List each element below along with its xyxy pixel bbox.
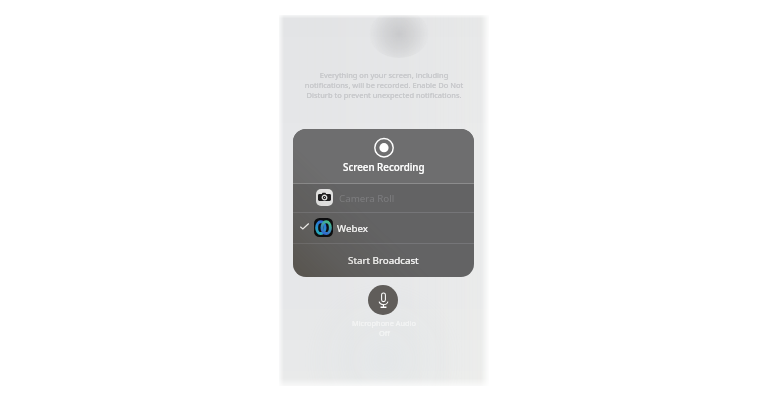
button[interactable]: Camera Roll — [293, 184, 474, 212]
staticText: Start Broadcast — [348, 254, 419, 267]
button[interactable]: Microphone Audio Off — [368, 285, 398, 315]
staticText: Camera Roll — [339, 192, 395, 205]
button[interactable]: Start Broadcast — [293, 244, 474, 277]
staticText: Webex — [337, 222, 368, 235]
staticText: Off — [379, 328, 390, 338]
staticText: Microphone Audio — [352, 318, 416, 328]
staticText: Everything on your screen, including not… — [279, 70, 489, 100]
button[interactable]: Webex — [293, 213, 474, 243]
staticText: Screen Recording — [343, 161, 425, 174]
